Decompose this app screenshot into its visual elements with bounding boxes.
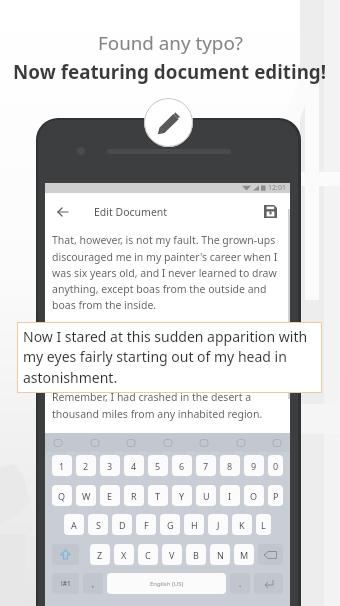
staticText: X (121, 549, 127, 561)
staticText: V (169, 549, 175, 561)
button[interactable]: . (230, 573, 250, 594)
button[interactable]: Y (172, 485, 192, 506)
staticText: 7 (203, 460, 209, 472)
staticText: L (261, 519, 266, 531)
staticText: , (92, 578, 95, 589)
button[interactable]: Z (90, 544, 110, 565)
button[interactable]: I (220, 485, 240, 506)
button[interactable]: 9 (244, 455, 264, 476)
button[interactable]: L (256, 514, 271, 535)
button[interactable]: T (148, 485, 168, 506)
button[interactable]: P (268, 485, 283, 506)
button[interactable]: Emoji (53, 438, 63, 448)
staticText: 0 (273, 460, 279, 472)
staticText: English (US) (150, 580, 184, 588)
button[interactable]: Translate (199, 438, 209, 448)
button[interactable]: Save (264, 205, 277, 218)
staticText: T (155, 490, 161, 502)
staticText: I (228, 490, 232, 502)
button[interactable]: 4 (124, 455, 144, 476)
button[interactable]: A (64, 514, 84, 535)
button[interactable]: X (114, 544, 134, 565)
button[interactable]: Shift (52, 544, 79, 565)
staticText: H (191, 519, 198, 531)
button[interactable]: N (210, 544, 230, 565)
button[interactable]: J (208, 514, 228, 535)
button[interactable]: Q (52, 485, 72, 506)
staticText: E (107, 490, 113, 502)
staticText: That, however, is not my fault. The grow… (52, 233, 286, 312)
staticText: Q (58, 490, 66, 502)
button[interactable]: Back (57, 206, 69, 218)
staticText: K (239, 519, 245, 531)
staticText: F (144, 519, 149, 531)
button[interactable]: Settings (272, 438, 282, 448)
staticText: 4 (131, 460, 137, 472)
button[interactable]: !#1 (52, 573, 79, 594)
button[interactable]: S (88, 514, 108, 535)
button[interactable]: English (US) (107, 573, 226, 594)
staticText: A (71, 519, 77, 531)
staticText: 1 (59, 460, 65, 472)
staticText: W (82, 490, 91, 502)
button[interactable]: V (162, 544, 182, 565)
button[interactable]: O (244, 485, 264, 506)
button[interactable]: 1 (52, 455, 72, 476)
button[interactable]: 6 (172, 455, 192, 476)
button[interactable]: Enter (254, 573, 283, 594)
button[interactable]: F (136, 514, 156, 535)
button[interactable]: 0 (268, 455, 283, 476)
button[interactable]: , (83, 573, 103, 594)
button[interactable]: B (186, 544, 206, 565)
staticText: N (217, 549, 224, 561)
button[interactable]: C (138, 544, 158, 565)
staticText: Found any typo? (98, 30, 243, 56)
button[interactable]: 8 (220, 455, 240, 476)
staticText: M (240, 549, 249, 561)
staticText: Remember, I had crashed in the desert a … (52, 390, 286, 421)
staticText: B (193, 549, 199, 561)
button[interactable]: Edit (144, 98, 193, 147)
staticText: J (217, 519, 220, 531)
button[interactable]: K (232, 514, 252, 535)
staticText: D (119, 519, 126, 531)
staticText: . (239, 578, 242, 589)
button[interactable]: 3 (100, 455, 120, 476)
staticText: 9 (251, 460, 257, 472)
staticText: 8 (227, 460, 233, 472)
staticText: 6 (179, 460, 185, 472)
button[interactable]: GIF (126, 438, 136, 448)
button[interactable]: W (76, 485, 96, 506)
staticText: S (96, 519, 101, 531)
staticText: P (273, 490, 279, 502)
staticText: Now featuring document editing! (13, 59, 327, 85)
staticText: Edit Document (94, 205, 168, 219)
button[interactable]: Clipboard (163, 438, 173, 448)
button[interactable]: G (160, 514, 180, 535)
staticText: G (167, 519, 174, 531)
button[interactable]: Voice input (236, 438, 246, 448)
staticText: R (131, 490, 137, 502)
button[interactable]: Backspace (258, 544, 283, 565)
button[interactable]: 7 (196, 455, 216, 476)
button[interactable]: U (196, 485, 216, 506)
staticText: 2 (83, 460, 89, 472)
staticText: !#1 (61, 579, 71, 588)
button[interactable]: H (184, 514, 204, 535)
staticText: Z (97, 549, 103, 561)
button[interactable]: 2 (76, 455, 96, 476)
button[interactable]: 5 (148, 455, 168, 476)
staticText: 5 (155, 460, 161, 472)
staticText: 12:01 (268, 183, 286, 193)
staticText: O (250, 490, 258, 502)
staticText: 3 (107, 460, 113, 472)
button[interactable]: Sticker (90, 438, 100, 448)
staticText: U (203, 490, 210, 502)
staticText: Now I stared at this sudden apparition w… (23, 327, 314, 388)
button[interactable]: R (124, 485, 144, 506)
button[interactable]: E (100, 485, 120, 506)
staticText: C (145, 549, 151, 561)
button[interactable]: M (234, 544, 254, 565)
button[interactable]: D (112, 514, 132, 535)
staticText: Y (179, 490, 185, 502)
